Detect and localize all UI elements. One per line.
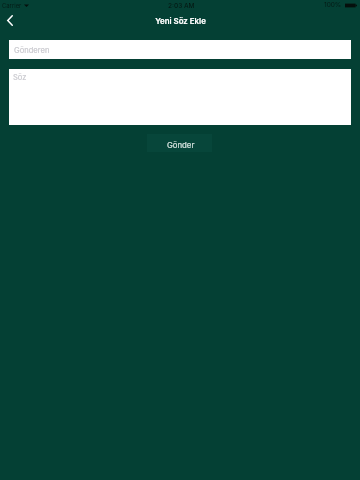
button[interactable]: Back xyxy=(0,10,21,30)
staticText: Söz xyxy=(13,73,27,82)
staticText: Gönder xyxy=(167,140,195,149)
staticText: Gönderen xyxy=(14,46,50,55)
button[interactable]: Gönderen xyxy=(9,40,351,59)
button[interactable]: Gönder xyxy=(147,134,212,152)
staticText: 100% xyxy=(324,1,342,9)
staticText: Carrier xyxy=(2,2,22,9)
staticText: 2:03 AM xyxy=(168,2,195,10)
staticText: Yeni Söz Ekle xyxy=(155,16,206,26)
